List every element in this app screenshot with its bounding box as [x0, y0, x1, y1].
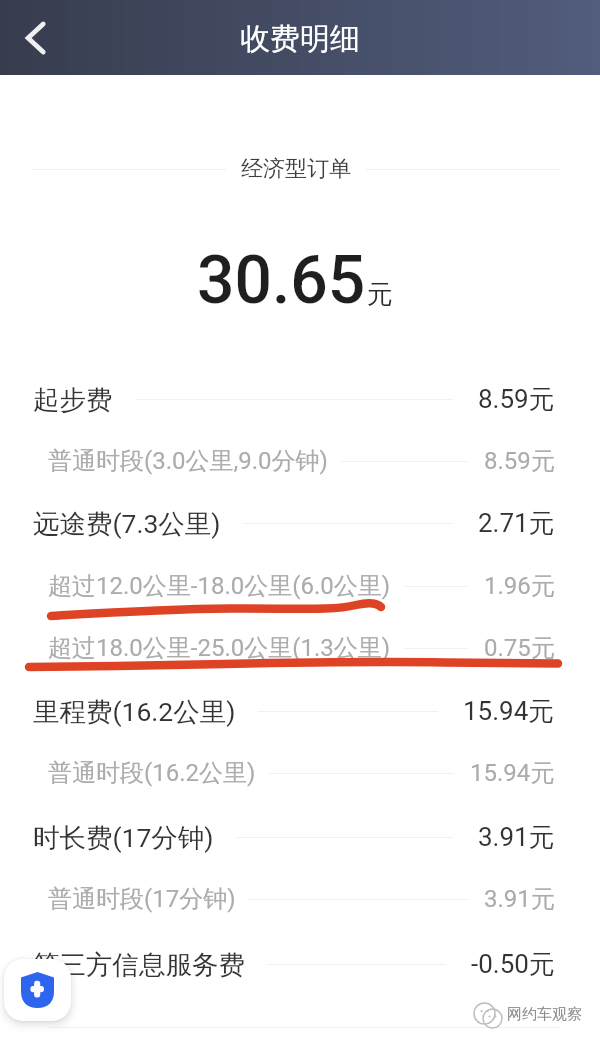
staticText: 第三方信息服务费: [33, 948, 245, 981]
button[interactable]: 超过12.0公里-18.0公里(6.0公里): [0, 566, 600, 606]
staticText: 里程费(16.2公里): [33, 695, 236, 728]
button[interactable]: 里程费(16.2公里): [0, 691, 600, 731]
staticText: 收费明细: [240, 20, 360, 58]
staticText: -0.50元: [471, 948, 555, 981]
button[interactable]: Safety shield: [4, 959, 71, 1021]
staticText: 普通时段(17分钟): [48, 884, 236, 914]
staticText: 起步费: [33, 383, 113, 416]
staticText: 时长费(17分钟): [33, 821, 214, 854]
staticText: 网约车观察: [507, 1005, 582, 1024]
staticText: 2.71元: [478, 507, 555, 540]
staticText: 超过12.0公里-18.0公里(6.0公里): [48, 571, 391, 601]
staticText: 3.91元: [484, 884, 555, 914]
staticText: 元: [367, 278, 393, 311]
button[interactable]: 普通时段(16.2公里): [0, 753, 600, 793]
button[interactable]: 起步费: [0, 379, 600, 419]
staticText: 1.96元: [484, 571, 555, 601]
staticText: 8.59元: [478, 383, 555, 416]
button[interactable]: 普通时段(17分钟): [0, 879, 600, 919]
button[interactable]: 时长费(17分钟): [0, 817, 600, 857]
staticText: 3.91元: [478, 821, 555, 854]
button[interactable]: 普通时段(3.0公里,9.0分钟): [0, 441, 600, 481]
staticText: 超过18.0公里-25.0公里(1.3公里): [48, 633, 391, 663]
staticText: 15.94元: [463, 695, 555, 728]
staticText: 0.75元: [484, 633, 555, 663]
staticText: 30.65: [197, 242, 366, 319]
button[interactable]: Back: [7, 9, 65, 67]
staticText: 远途费(7.3公里): [33, 507, 221, 540]
staticText: 15.94元: [470, 758, 555, 788]
staticText: 经济型订单: [241, 155, 351, 183]
staticText: 8.59元: [484, 446, 555, 476]
staticText: 普通时段(3.0公里,9.0分钟): [48, 446, 328, 476]
button[interactable]: 超过18.0公里-25.0公里(1.3公里): [0, 628, 600, 668]
staticText: 普通时段(16.2公里): [48, 758, 256, 788]
button[interactable]: 第三方信息服务费: [0, 944, 600, 984]
button[interactable]: 远途费(7.3公里): [0, 503, 600, 543]
